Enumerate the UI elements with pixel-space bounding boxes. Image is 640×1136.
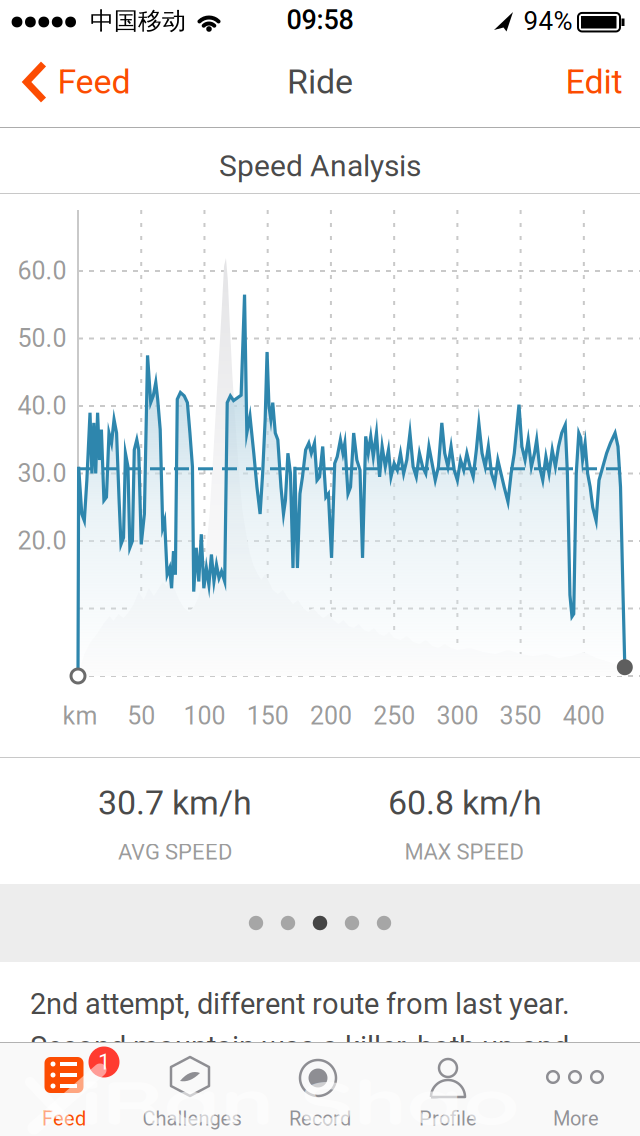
staticText: Record <box>289 1107 351 1130</box>
staticText: 300 <box>436 701 478 731</box>
staticText: More <box>553 1107 599 1130</box>
staticText: 200 <box>310 701 352 731</box>
staticText: Ride <box>287 62 353 102</box>
staticText: MAX SPEED <box>404 839 523 865</box>
staticText: 1 <box>98 1049 110 1075</box>
staticText: 50 <box>127 701 155 731</box>
staticText: 100 <box>183 701 225 731</box>
staticText: Speed Analysis <box>219 148 421 184</box>
button[interactable]: Feed <box>21 54 130 110</box>
staticText: 400 <box>563 701 605 731</box>
staticText: AVG SPEED <box>118 839 232 865</box>
button[interactable]: Record <box>256 1043 384 1136</box>
staticText: 250 <box>373 701 415 731</box>
button[interactable]: Challenges <box>128 1043 256 1136</box>
staticText: 350 <box>500 701 542 731</box>
staticText: km <box>62 701 97 731</box>
staticText: Edit <box>565 62 622 102</box>
staticText: 2nd attempt, different route from last y… <box>30 987 570 1021</box>
staticText: 09:58 <box>286 4 353 36</box>
staticText: 60.0 <box>17 256 66 286</box>
staticText: 94% <box>523 6 572 36</box>
staticText: Challenges <box>142 1107 241 1130</box>
staticText: 50.0 <box>17 324 66 353</box>
staticText: Second mountain was a killer, both up an… <box>30 1030 569 1064</box>
staticText: 30.7 km/h <box>98 783 252 823</box>
button[interactable]: More <box>512 1043 640 1136</box>
staticText: Profile <box>419 1107 477 1130</box>
staticText: 40.0 <box>17 391 66 421</box>
staticText: 中国移动 <box>90 6 186 36</box>
button[interactable]: Edit <box>565 54 622 110</box>
staticText: 150 <box>247 701 289 731</box>
staticText: iRan Shao <box>154 1064 446 1136</box>
staticText: 30.0 <box>17 459 66 488</box>
staticText: Feed <box>57 62 130 102</box>
button[interactable]: Profile <box>384 1043 512 1136</box>
staticText: 60.8 km/h <box>388 783 542 823</box>
button[interactable]: 1 <box>0 1043 128 1136</box>
staticText: Feed <box>42 1107 86 1130</box>
staticText: 20.0 <box>17 526 66 556</box>
